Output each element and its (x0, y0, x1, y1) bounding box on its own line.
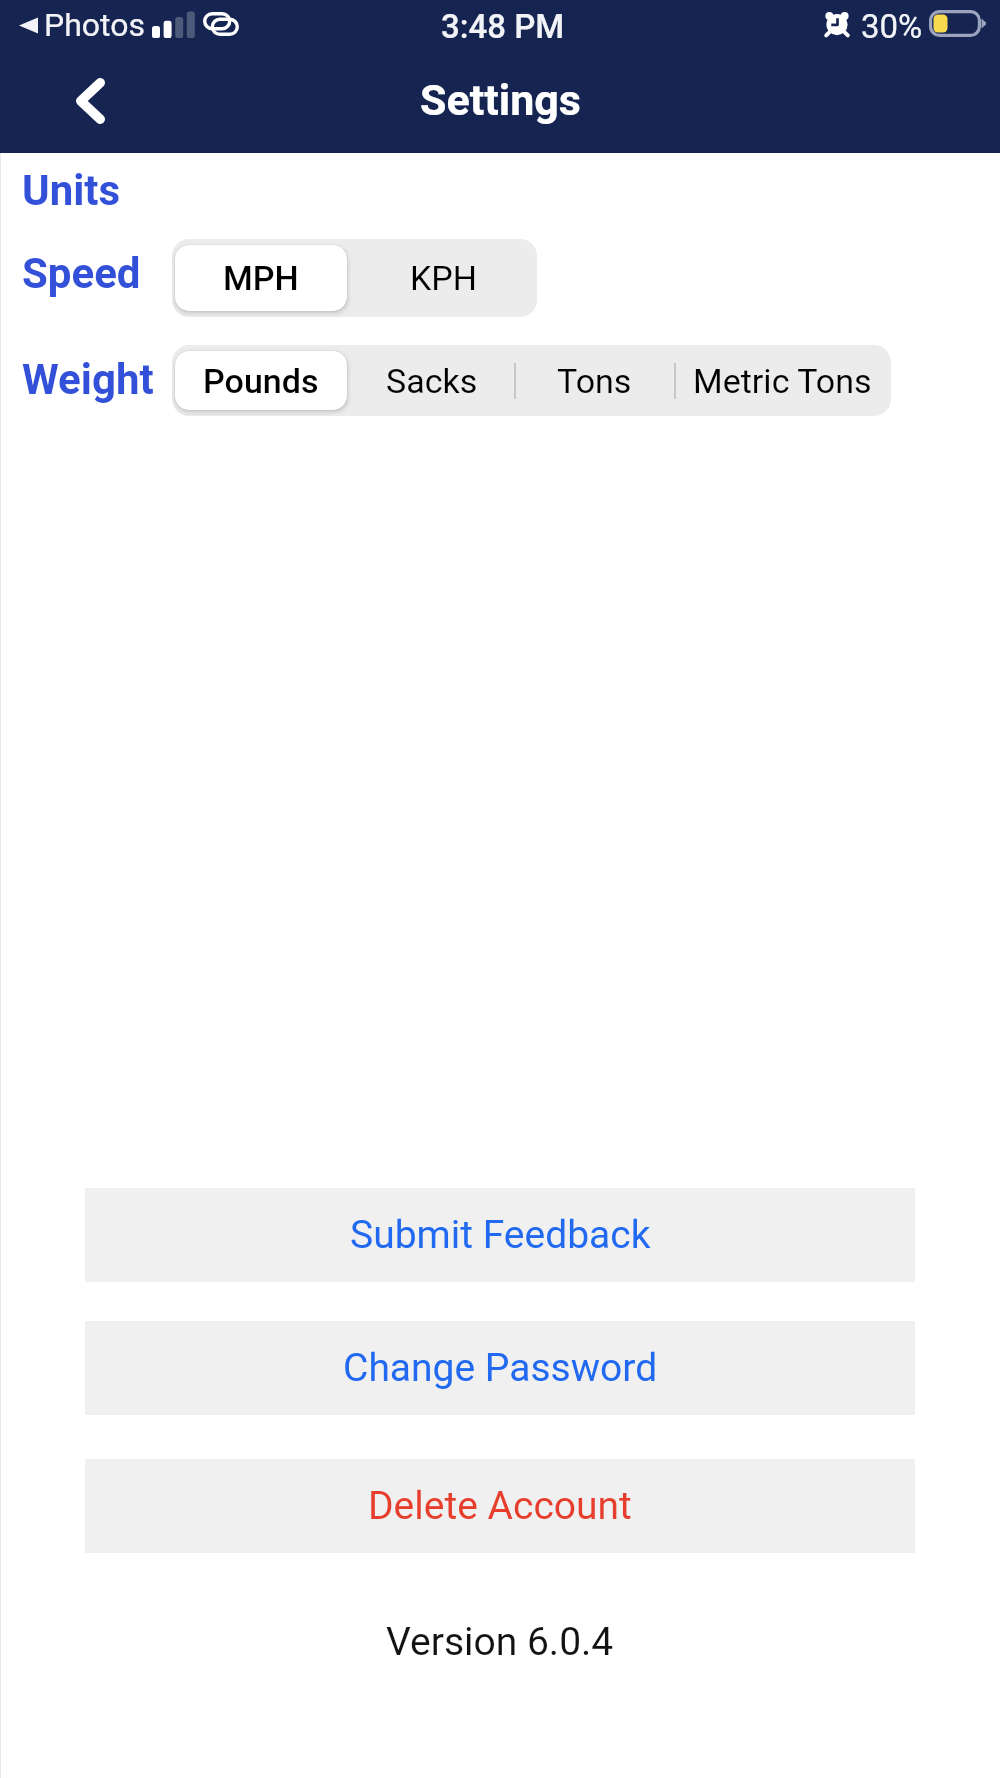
staticText: 30% (861, 7, 923, 46)
staticText: Submit Feedback (350, 1212, 651, 1258)
button[interactable]: Pounds (172, 345, 350, 416)
button[interactable]: Metric Tons (674, 345, 891, 416)
staticText: Change Password (343, 1345, 658, 1391)
button[interactable]: Back (52, 63, 128, 139)
button[interactable]: KPH (350, 239, 537, 317)
staticText: KPH (410, 258, 478, 298)
staticText: Version 6.0.4 (386, 1619, 614, 1665)
staticText: Tons (557, 361, 632, 401)
staticText: Pounds (203, 361, 319, 401)
button[interactable]: MPH (172, 239, 350, 317)
button[interactable]: Sacks (350, 345, 514, 416)
button[interactable]: Submit Feedback (85, 1188, 915, 1282)
staticText: MPH (223, 258, 299, 298)
staticText: Photos (44, 6, 145, 44)
button[interactable]: Delete Account (85, 1459, 915, 1553)
staticText: Delete Account (368, 1483, 632, 1529)
button[interactable]: Tons (514, 345, 674, 416)
staticText: 3:48 PM (441, 7, 565, 46)
staticText: Speed (22, 249, 141, 298)
staticText: Sacks (386, 361, 478, 401)
staticText: Settings (420, 75, 581, 125)
staticText: Units (22, 166, 121, 215)
staticText: Weight (22, 355, 154, 404)
button[interactable]: Change Password (85, 1321, 915, 1415)
staticText: Metric Tons (693, 361, 872, 401)
